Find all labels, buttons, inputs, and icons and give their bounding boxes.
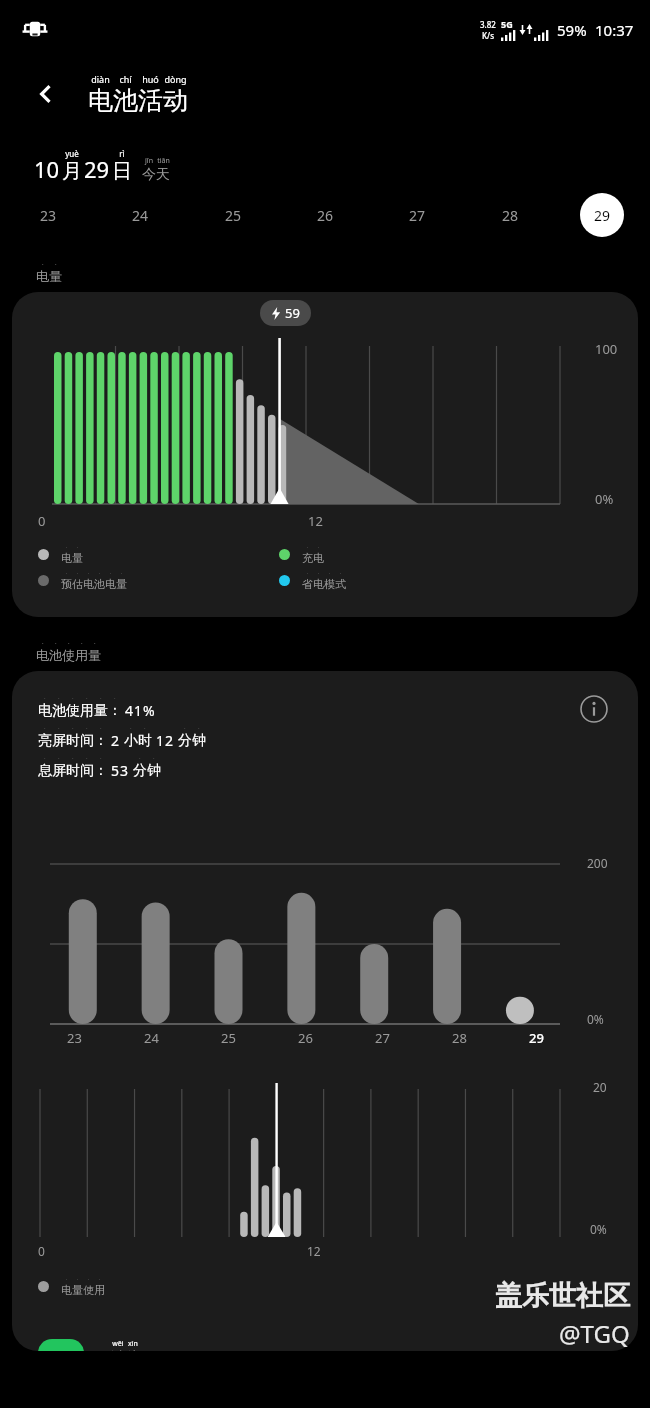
staticText: 24: [132, 206, 149, 225]
staticText: 时: [66, 762, 80, 780]
staticText: ·: [318, 544, 320, 551]
staticText: 3: [120, 761, 129, 780]
staticText: 池: [49, 647, 62, 663]
staticText: 电: [61, 551, 72, 565]
staticText: ·: [153, 754, 155, 762]
staticText: 28: [452, 1029, 467, 1047]
staticText: ·: [55, 260, 57, 268]
staticText: 23: [40, 206, 57, 225]
staticText: ·: [58, 694, 60, 702]
staticText: ·: [66, 1276, 68, 1283]
staticText: ·: [77, 544, 79, 551]
staticText: ·: [114, 694, 116, 702]
staticText: 间: [80, 732, 94, 750]
staticText: ·: [66, 570, 68, 577]
button[interactable]: 59: [12, 292, 638, 617]
staticText: 池: [52, 702, 66, 720]
staticText: ·: [86, 754, 88, 762]
staticText: 使: [66, 702, 80, 720]
staticText: 5: [111, 761, 120, 780]
staticText: ·: [100, 694, 102, 702]
staticText: ·: [68, 639, 70, 647]
staticText: 屏: [52, 762, 66, 780]
staticText: 亮: [38, 732, 52, 750]
button[interactable]: Info: [574, 689, 614, 729]
staticText: 0: [38, 512, 46, 530]
staticText: wēi: [112, 1339, 124, 1349]
staticText: ·: [94, 639, 96, 647]
staticText: 量: [94, 702, 108, 720]
staticText: 29: [594, 206, 611, 225]
staticText: 使: [62, 647, 75, 663]
staticText: 5G: [501, 18, 513, 30]
staticText: ·: [72, 754, 74, 762]
button[interactable]: 24: [118, 193, 162, 237]
staticText: 电: [105, 577, 116, 591]
staticText: 电: [313, 551, 324, 565]
staticText: 模: [324, 577, 335, 591]
staticText: ·: [99, 570, 101, 577]
staticText: 量: [116, 577, 127, 591]
staticText: 日: [112, 159, 132, 184]
button[interactable]: 29: [580, 193, 624, 237]
staticText: ·: [42, 639, 44, 647]
staticText: 27: [409, 206, 426, 225]
staticText: ：: [94, 732, 108, 750]
staticText: 预: [61, 577, 72, 591]
staticText: ·: [198, 724, 200, 732]
staticText: 0%: [590, 1221, 607, 1237]
staticText: tiān: [157, 156, 170, 166]
staticText: 10: [34, 154, 60, 184]
staticText: 量: [72, 1283, 83, 1297]
staticText: ·: [72, 724, 74, 732]
staticText: 3.82: [480, 19, 496, 30]
staticText: ·: [81, 639, 83, 647]
staticText: 分: [178, 732, 192, 750]
staticText: 使: [83, 1283, 94, 1297]
staticText: ：: [94, 762, 108, 780]
staticText: ·: [121, 570, 123, 577]
staticText: ·: [58, 724, 60, 732]
staticText: 量: [49, 268, 62, 284]
button[interactable]: Info: [12, 671, 638, 1351]
staticText: ·: [44, 724, 46, 732]
staticText: 电: [61, 1283, 72, 1297]
button[interactable]: 23: [26, 193, 70, 237]
staticText: 充: [302, 551, 313, 565]
staticText: 用: [80, 702, 94, 720]
staticText: K/s: [482, 30, 495, 41]
staticText: 微: [110, 1349, 125, 1351]
button[interactable]: 27: [395, 193, 439, 237]
button[interactable]: wēi: [38, 1339, 638, 1351]
staticText: ·: [318, 570, 320, 577]
staticText: 电: [36, 268, 49, 284]
staticText: ·: [88, 1276, 90, 1283]
staticText: 27: [375, 1029, 390, 1047]
staticText: ·: [110, 570, 112, 577]
staticText: ·: [130, 724, 132, 732]
button[interactable]: Back: [26, 74, 66, 114]
staticText: 2: [111, 731, 120, 750]
staticText: xìn: [128, 1339, 138, 1349]
staticText: 时: [66, 732, 80, 750]
staticText: ·: [307, 570, 309, 577]
staticText: 电: [83, 577, 94, 591]
staticText: huó: [142, 73, 159, 85]
staticText: ·: [55, 639, 57, 647]
button[interactable]: 25: [211, 193, 255, 237]
button[interactable]: 26: [303, 193, 347, 237]
staticText: ·: [86, 724, 88, 732]
staticText: ·: [307, 544, 309, 551]
staticText: 用: [94, 1283, 105, 1297]
button[interactable]: 28: [488, 193, 532, 237]
staticText: 量: [88, 647, 101, 663]
staticText: 息: [38, 762, 52, 780]
staticText: 间: [80, 762, 94, 780]
staticText: ·: [66, 544, 68, 551]
staticText: 月: [62, 159, 82, 184]
staticText: yuè: [65, 148, 79, 159]
staticText: diàn: [91, 73, 110, 85]
staticText: 省: [302, 577, 313, 591]
